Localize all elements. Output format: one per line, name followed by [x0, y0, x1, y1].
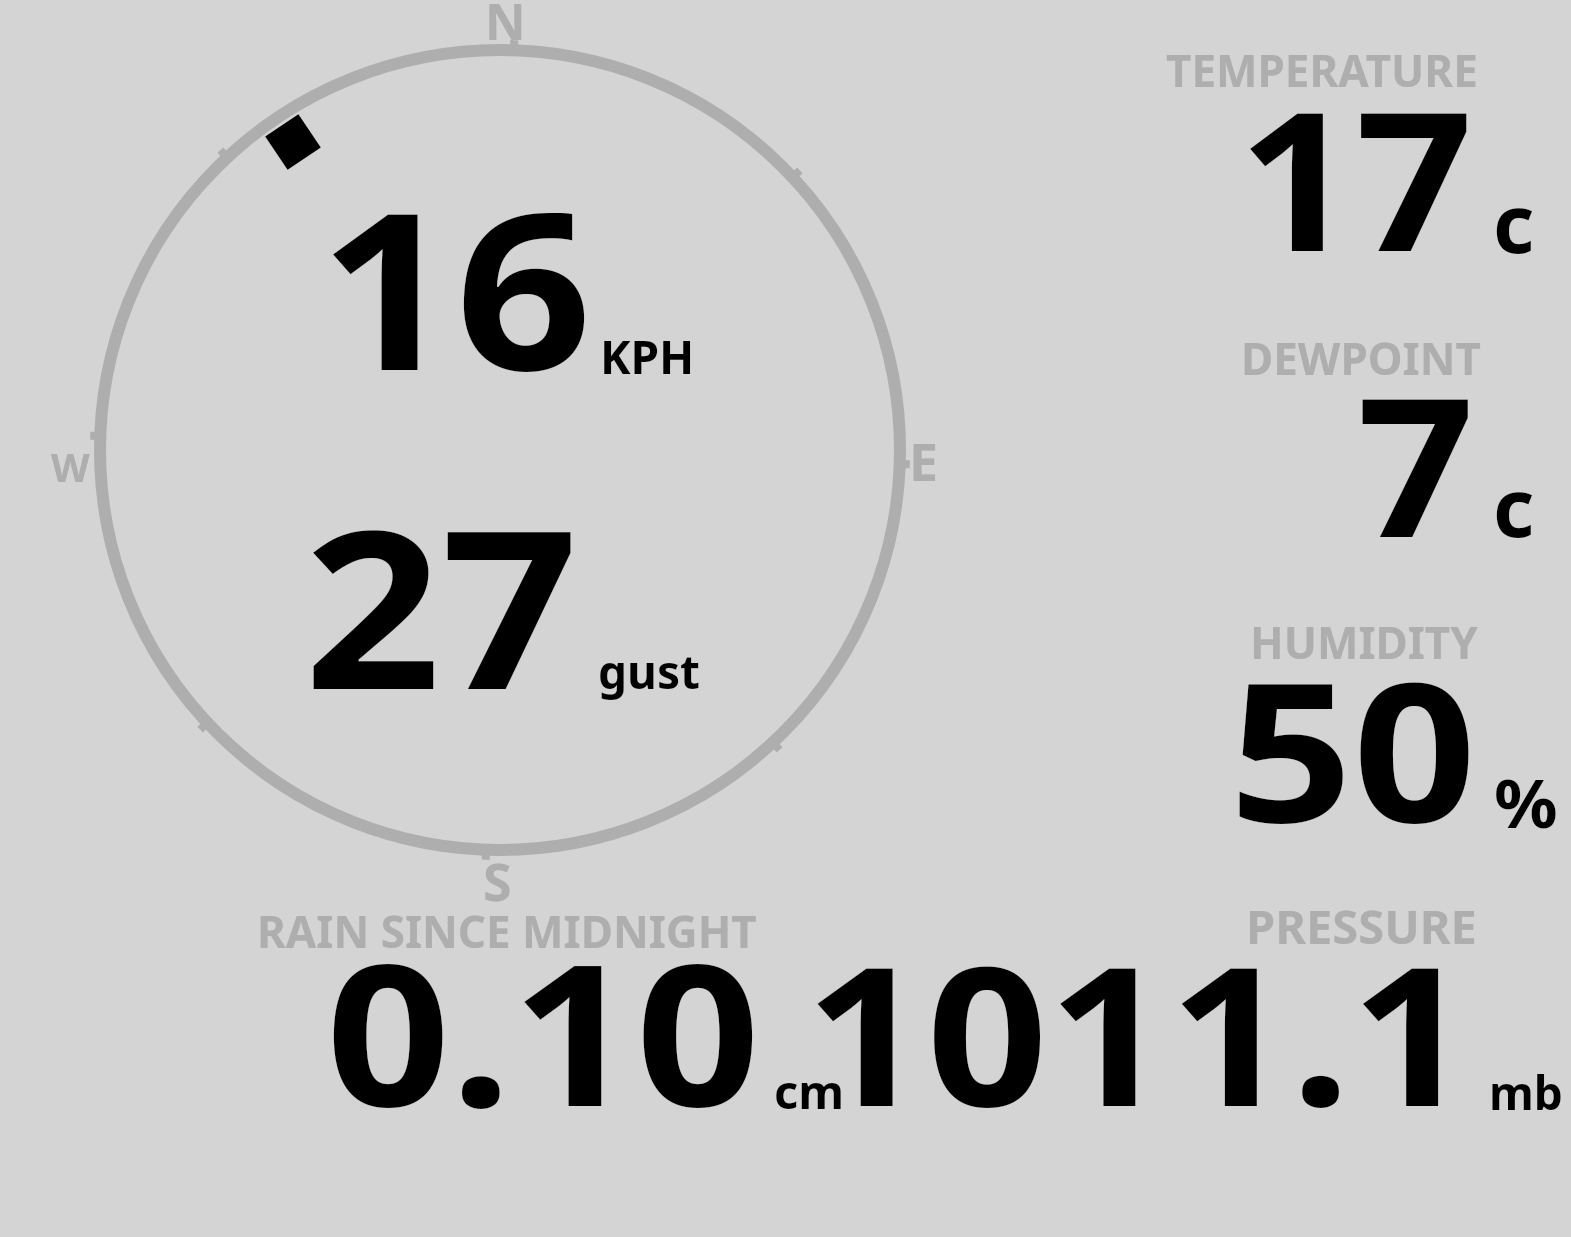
staticText: 0.10 [326, 898, 761, 1164]
staticText: 17 [1238, 45, 1473, 308]
staticText: E [909, 425, 939, 496]
staticText: N [485, 0, 526, 55]
button[interactable]: Dewpoint 7 degrees Celsius [1100, 330, 1560, 580]
staticText: RAIN SINCE MIDNIGHT [257, 901, 757, 961]
staticText: DEWPOINT [1241, 328, 1481, 388]
staticText: KPH [600, 325, 695, 388]
staticText: W [51, 439, 90, 493]
staticText: mb [1489, 1061, 1563, 1124]
staticText: gust [598, 640, 701, 703]
staticText: TEMPERATURE [1166, 40, 1478, 100]
button[interactable]: Temperature 17 degrees Celsius [1100, 40, 1560, 290]
staticText: cm [774, 1059, 845, 1123]
staticText: 27 [304, 454, 579, 754]
staticText: c [1493, 167, 1535, 276]
button[interactable]: Rain since midnight 0.10 cm [240, 900, 860, 1130]
staticText: 16 [319, 137, 593, 434]
button[interactable]: Humidity 50 percent [1100, 612, 1560, 852]
staticText: HUMIDITY [1250, 612, 1478, 672]
button[interactable]: Wind 16 KPH gusting 27, compass [60, 20, 940, 880]
staticText: 1011.1 [805, 900, 1473, 1163]
staticText: PRESSURE [1246, 894, 1477, 958]
button[interactable]: Pressure 1011.1 mb [870, 900, 1570, 1130]
staticText: c [1493, 451, 1535, 560]
staticText: S [483, 845, 512, 916]
staticText: 7 [1357, 331, 1475, 594]
staticText: 50 [1229, 616, 1476, 879]
staticText: % [1494, 757, 1558, 847]
